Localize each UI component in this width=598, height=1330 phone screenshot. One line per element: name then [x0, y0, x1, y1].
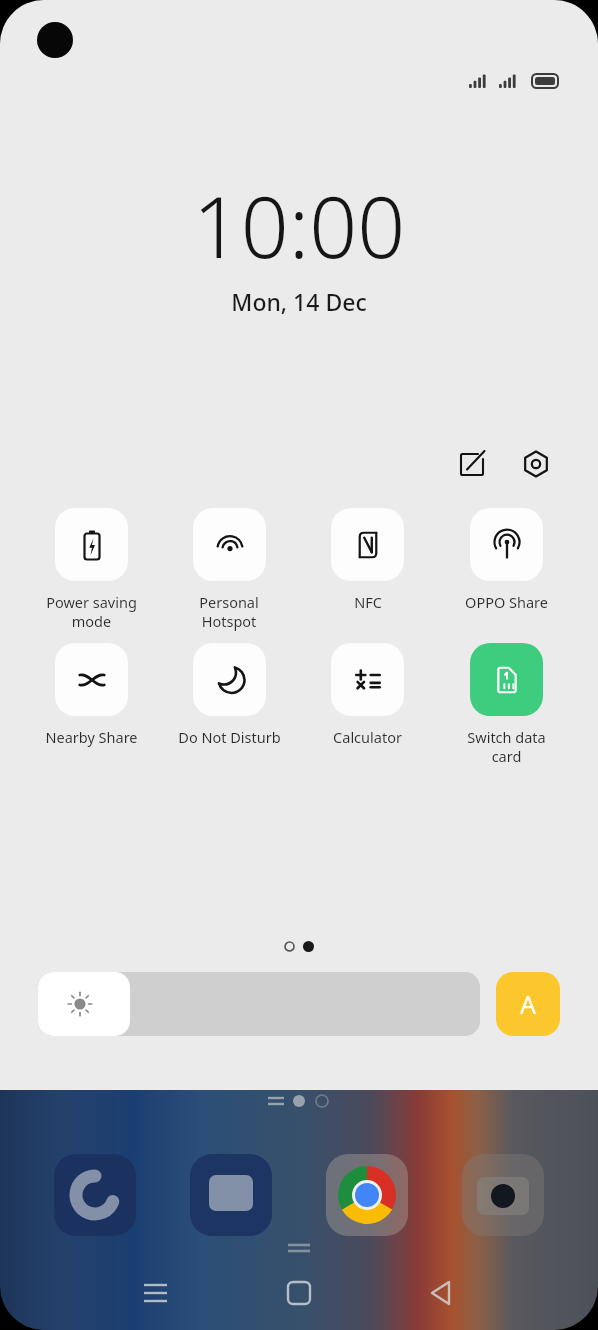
button[interactable]: Edit tiles — [450, 442, 494, 486]
button[interactable]: Brightness — [38, 972, 480, 1036]
button[interactable]: Do Not Disturb — [160, 643, 298, 747]
button[interactable]: Settings — [514, 442, 558, 486]
staticText: Mon, 14 Dec — [0, 286, 598, 317]
button[interactable]: Power saving mode — [22, 508, 160, 631]
staticText: NFC — [354, 592, 382, 612]
button[interactable]: NFC — [298, 508, 437, 612]
button[interactable]: OPPO Share — [437, 508, 576, 612]
button[interactable]: Switch data card — [437, 643, 576, 766]
staticText: Personal Hotspot — [199, 592, 259, 631]
button[interactable]: Auto brightness — [496, 972, 560, 1036]
staticText: Switch data card — [467, 727, 546, 766]
staticText: Calculator — [333, 727, 402, 747]
staticText: Power saving mode — [46, 592, 137, 631]
staticText: 10:00 — [0, 168, 598, 282]
staticText: OPPO Share — [465, 592, 548, 612]
staticText: Do Not Disturb — [178, 727, 281, 747]
button[interactable]: Calculator — [298, 643, 437, 747]
staticText: A — [520, 987, 536, 1021]
button[interactable]: Nearby Share — [22, 643, 160, 747]
button[interactable]: Personal Hotspot — [160, 508, 298, 631]
staticText: Nearby Share — [45, 727, 138, 747]
